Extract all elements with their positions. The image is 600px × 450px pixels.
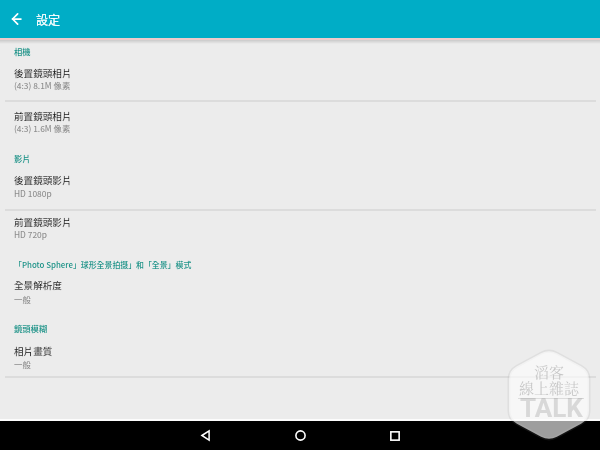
button[interactable]: Back	[0, 0, 33, 38]
staticText: 設定	[36, 11, 61, 29]
staticText: 後置鏡頭影片	[14, 173, 72, 187]
staticText: 「Photo Sphere」球形全景拍摄」和「全景」模式	[14, 259, 192, 270]
staticText: 前置鏡頭相片	[14, 109, 72, 123]
staticText: 後置鏡頭相片	[14, 66, 72, 80]
staticText: 全景解析度	[14, 278, 62, 292]
button[interactable]: Back	[185, 421, 225, 450]
staticText: 相機	[14, 45, 31, 57]
staticText: (4:3) 8.1M 像素	[14, 79, 71, 91]
button[interactable]: Recent apps	[375, 421, 415, 450]
button[interactable]: 前置鏡頭影片	[0, 210, 600, 252]
staticText: 滔客	[534, 361, 565, 383]
staticText: HD 720p	[14, 228, 47, 240]
button[interactable]: 後置鏡頭影片	[0, 169, 600, 209]
staticText: 相片畫質	[14, 344, 53, 358]
staticText: 影片	[14, 152, 31, 164]
staticText: TALK	[520, 393, 583, 423]
button[interactable]: 前置鏡頭相片	[0, 102, 600, 148]
button[interactable]: 後置鏡頭相片	[0, 62, 600, 101]
staticText: 一般	[14, 293, 31, 305]
staticText: 前置鏡頭影片	[14, 215, 72, 229]
button[interactable]: 相片畫質	[0, 339, 600, 377]
button[interactable]: Home	[280, 421, 320, 450]
staticText: (4:3) 1.6M 像素	[14, 122, 71, 134]
staticText: 線上雜誌	[519, 377, 580, 399]
button[interactable]: 全景解析度	[0, 274, 600, 315]
staticText: 一般	[14, 358, 31, 370]
staticText: HD 1080p	[14, 187, 52, 199]
staticText: 鏡頭模糊	[14, 322, 48, 334]
